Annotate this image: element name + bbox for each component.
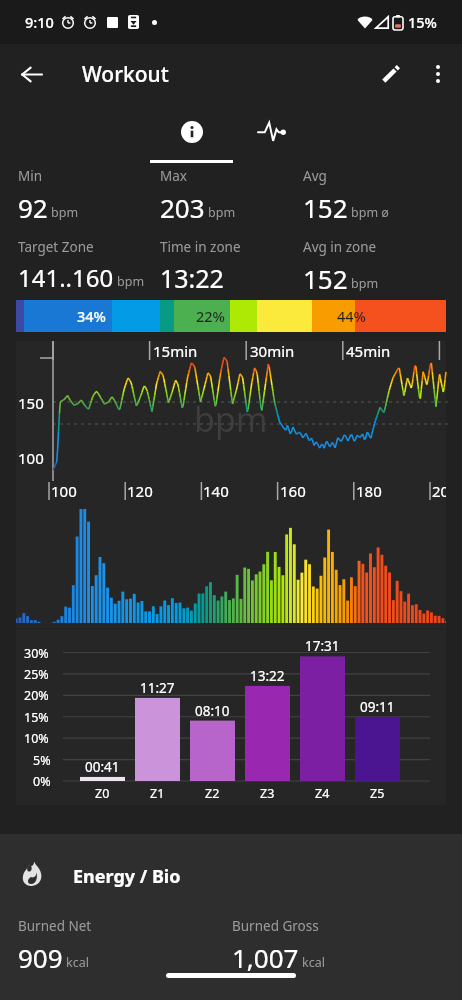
staticText: 13:22 — [160, 261, 224, 295]
staticText: 152 — [303, 190, 348, 225]
staticText: 45min — [346, 341, 391, 361]
staticText: 150 — [18, 393, 44, 413]
staticText: 152 — [303, 261, 348, 296]
staticText: 180 — [356, 481, 382, 501]
button[interactable]: Chart tab — [233, 105, 311, 163]
staticText: 160 — [280, 481, 306, 501]
staticText: bpm — [351, 275, 379, 292]
staticText: 0% — [33, 773, 51, 790]
staticText: Avg in zone — [303, 238, 377, 256]
staticText: Avg — [303, 167, 327, 185]
staticText: 09:11 — [360, 698, 395, 716]
staticText: 15% — [24, 709, 49, 726]
button[interactable]: More options — [416, 52, 460, 96]
staticText: bpm — [208, 204, 236, 221]
button[interactable]: Back — [9, 52, 53, 96]
staticText: 140 — [203, 481, 229, 501]
staticText: bpm — [51, 204, 79, 221]
staticText: 203 — [160, 190, 205, 225]
staticText: 34% — [77, 306, 106, 326]
staticText: Z1 — [150, 785, 165, 802]
staticText: 100 — [18, 448, 44, 468]
staticText: Burned Net — [18, 917, 92, 935]
staticText: Z2 — [205, 785, 220, 802]
staticText: 120 — [127, 481, 153, 501]
staticText: 20 — [432, 481, 446, 501]
staticText: kcal — [302, 954, 325, 971]
staticText: Target Zone — [18, 238, 94, 256]
staticText: Z5 — [370, 785, 385, 802]
button[interactable]: Edit — [369, 52, 413, 96]
staticText: Min — [18, 167, 43, 185]
staticText: Burned Gross — [232, 917, 319, 935]
staticText: 08:10 — [195, 702, 230, 720]
staticText: 17:31 — [305, 637, 340, 655]
staticText: bpm ø — [351, 204, 389, 221]
staticText: Z4 — [315, 785, 330, 802]
staticText: 00:41 — [85, 758, 120, 776]
staticText: 20% — [24, 687, 49, 704]
staticText: 25% — [24, 666, 49, 683]
staticText: 30min — [250, 341, 295, 361]
staticText: 11:27 — [140, 679, 175, 697]
staticText: 15% — [408, 12, 437, 32]
staticText: 22% — [196, 306, 225, 326]
staticText: 9:10 — [25, 12, 54, 32]
staticText: Z0 — [95, 785, 110, 802]
button[interactable]: Info tab — [150, 105, 233, 163]
staticText: 10% — [24, 730, 49, 747]
staticText: Max — [160, 167, 187, 185]
staticText: 13:22 — [250, 667, 285, 685]
staticText: 1,007 — [232, 940, 299, 975]
staticText: 100 — [51, 481, 77, 501]
staticText: kcal — [66, 954, 89, 971]
staticText: 15min — [153, 341, 198, 361]
staticText: 141..160 — [18, 261, 114, 294]
staticText: 44% — [337, 306, 366, 326]
staticText: 92 — [18, 190, 48, 225]
staticText: Workout — [82, 60, 169, 89]
staticText: 5% — [33, 752, 51, 769]
staticText: bpm — [194, 396, 268, 442]
staticText: 30% — [24, 645, 49, 662]
staticText: Energy / Bio — [73, 864, 181, 889]
staticText: Z3 — [260, 785, 275, 802]
staticText: Time in zone — [160, 238, 241, 256]
staticText: 909 — [18, 940, 63, 975]
staticText: bpm — [117, 273, 145, 290]
